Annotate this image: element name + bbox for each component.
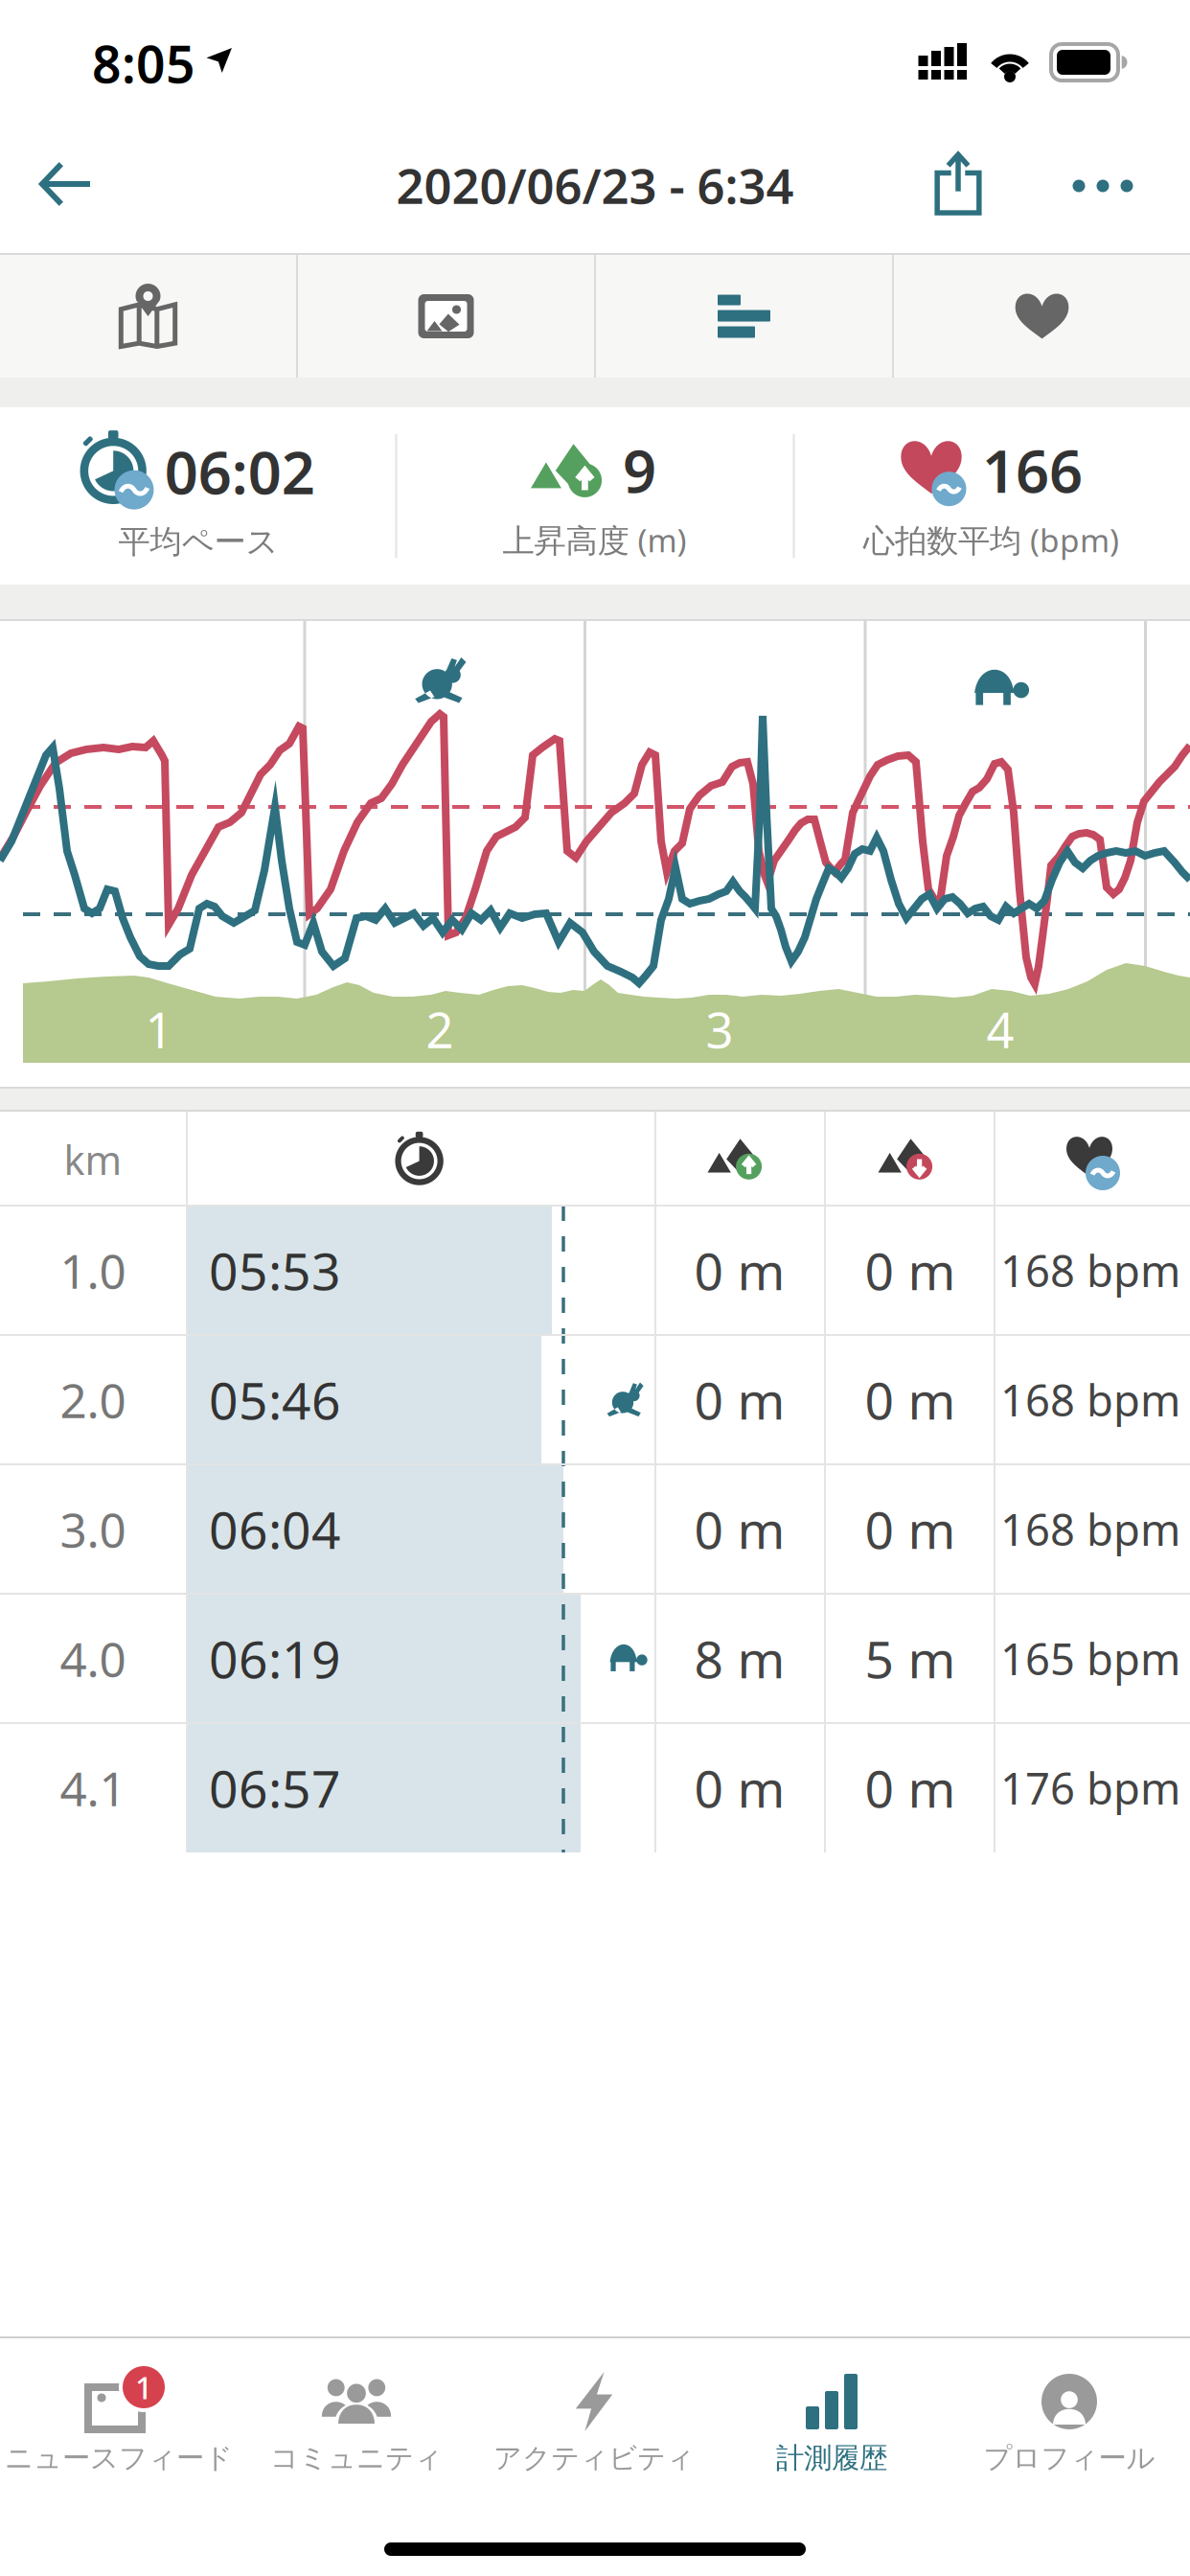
staticText: 計測履歴	[776, 2441, 887, 2475]
staticText: 4.0	[60, 1627, 126, 1690]
button[interactable]: 1	[0, 2348, 238, 2501]
staticText: 05:53	[209, 1236, 341, 1304]
staticText: 平均ペース	[118, 522, 278, 561]
staticText: 2020/06/23 - 6:34	[396, 153, 794, 217]
staticText: 05:46	[209, 1366, 341, 1434]
button[interactable]: Photos	[298, 255, 594, 378]
staticText: 1	[145, 997, 173, 1062]
staticText: 166	[982, 431, 1083, 509]
button[interactable]: プロフィール	[950, 2348, 1188, 2501]
staticText: アクティビティ	[493, 2441, 695, 2475]
staticText: 165 bpm	[1000, 1630, 1180, 1687]
staticText: 176 bpm	[1000, 1759, 1180, 1817]
staticText: コミュニティ	[270, 2441, 443, 2475]
staticText: 0 m	[865, 1366, 956, 1434]
staticText: 0 m	[694, 1495, 785, 1563]
staticText: 06:04	[209, 1495, 341, 1563]
button[interactable]: Share	[914, 134, 1002, 234]
staticText: 3.0	[60, 1498, 126, 1560]
staticText: 06:02	[165, 432, 315, 511]
staticText: 4.1	[60, 1756, 126, 1819]
staticText: 0 m	[865, 1495, 956, 1563]
staticText: 168 bpm	[1000, 1371, 1180, 1428]
staticText: 06:19	[209, 1624, 341, 1692]
staticText: 2.0	[60, 1368, 126, 1431]
staticText: ニュースフィード	[5, 2441, 233, 2475]
staticText: 0 m	[694, 1754, 785, 1822]
staticText: 8:05	[92, 29, 195, 97]
staticText: 上昇高度 (m)	[503, 519, 687, 561]
button[interactable]: Heart rate	[894, 255, 1190, 378]
button[interactable]: アクティビティ	[475, 2348, 713, 2501]
staticText: 06:57	[209, 1754, 341, 1822]
staticText: 3	[706, 997, 733, 1062]
button[interactable]: Splits	[596, 255, 892, 378]
staticText: 0 m	[694, 1366, 785, 1434]
staticText: 0 m	[865, 1754, 956, 1822]
staticText: 168 bpm	[1000, 1500, 1180, 1558]
staticText: 5 m	[865, 1624, 956, 1692]
staticText: 0 m	[865, 1236, 956, 1304]
staticText: 8 m	[694, 1624, 785, 1692]
staticText: 1.0	[60, 1239, 126, 1302]
staticText: 2	[426, 997, 454, 1062]
staticText: 心拍数平均 (bpm)	[863, 519, 1119, 561]
staticText: 4	[986, 997, 1014, 1062]
staticText: プロフィール	[984, 2441, 1155, 2475]
staticText: km	[64, 1133, 122, 1186]
staticText: 0 m	[694, 1236, 785, 1304]
button[interactable]: 計測履歴	[713, 2348, 950, 2501]
button[interactable]: Back	[17, 140, 113, 228]
staticText: 1	[135, 2367, 152, 2408]
staticText: 9	[623, 431, 656, 509]
button[interactable]: コミュニティ	[238, 2348, 475, 2501]
button[interactable]: Map	[0, 255, 296, 378]
button[interactable]: More	[1057, 164, 1148, 207]
staticText: 168 bpm	[1000, 1241, 1180, 1299]
